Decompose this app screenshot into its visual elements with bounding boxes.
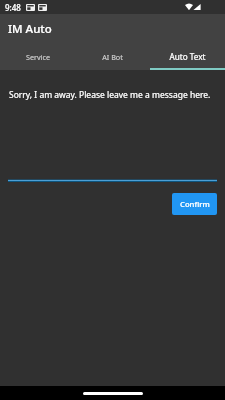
other: Mobile signal: [193, 4, 201, 10]
button[interactable]: AI Bot: [75, 43, 150, 70]
staticText: Sorry, I am away. Please leave me a mess…: [9, 89, 211, 101]
staticText: Auto Text: [169, 51, 206, 62]
staticText: IM Auto: [8, 21, 52, 37]
staticText: Confirm: [180, 199, 210, 209]
staticText: AI Bot: [102, 52, 123, 62]
button[interactable]: Auto Text: [150, 43, 225, 70]
button[interactable]: Confirm: [172, 193, 217, 215]
staticText: Service: [26, 52, 50, 62]
button[interactable]: Service: [0, 43, 75, 70]
staticText: 9:48: [5, 2, 21, 13]
button[interactable]: Sorry, I am away. Please leave me a mess…: [0, 70, 225, 182]
other: Home gesture handle: [83, 392, 143, 395]
other: Wi-Fi signal: [185, 4, 193, 10]
